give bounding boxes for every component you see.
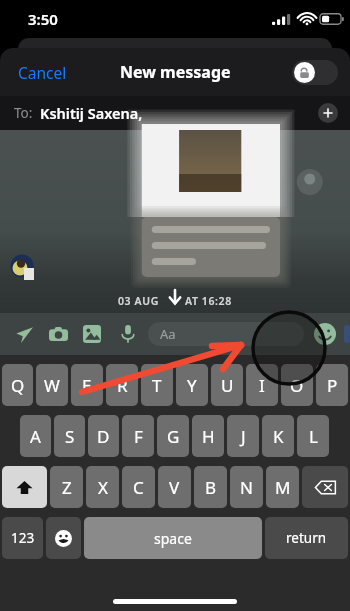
staticText: To: [14,104,33,122]
button[interactable]: space [84,517,262,559]
button[interactable]: return [265,517,348,559]
staticText: Z [62,476,72,499]
button[interactable]: I [246,364,278,406]
button[interactable]: F [122,415,154,457]
button[interactable]: O [281,364,313,406]
button[interactable]: Emoji [308,317,342,351]
staticText: H [202,425,215,448]
staticText: Kshitij Saxena, [40,103,143,123]
button[interactable]: Y [176,364,208,406]
button[interactable]: Voice message [114,320,142,348]
staticText: AT 16:28 [185,294,232,308]
button[interactable]: V [158,466,191,508]
staticText: 3:50 [28,9,58,29]
staticText: W [44,374,60,397]
button[interactable]: J [227,415,259,457]
button[interactable]: Aa [148,322,304,346]
staticText: E [82,374,92,397]
staticText: return [286,529,327,547]
button[interactable]: 123 [2,517,43,559]
button[interactable]: Cancel [0,54,85,91]
staticText: 03 AUG [118,294,159,308]
staticText: P [327,374,338,397]
staticText: Q [11,374,25,397]
button[interactable]: R [106,364,138,406]
staticText: J [241,425,246,448]
button[interactable]: Send [10,320,38,348]
staticText: D [97,425,110,448]
button[interactable]: K [262,415,294,457]
staticText: K [273,425,284,448]
staticText: F [134,425,143,448]
staticText: 123 [11,529,35,547]
staticText: X [98,476,108,499]
staticText: Y [187,374,197,397]
button[interactable]: Backspace [302,466,348,508]
button[interactable]: U [211,364,243,406]
button[interactable]: L [297,415,329,457]
staticText: space [154,529,192,548]
button[interactable]: X [86,466,119,508]
button[interactable]: M [266,466,299,508]
staticText: Aa [160,325,176,343]
button[interactable]: W [36,364,68,406]
button[interactable]: N [230,466,263,508]
staticText: M [275,476,291,499]
button[interactable]: D [88,415,119,457]
staticText: G [167,425,180,448]
button[interactable]: Photos [78,320,106,348]
staticText: R [117,374,128,397]
staticText: Cancel [18,62,67,83]
staticText: New message [120,61,231,83]
button[interactable]: Z [50,466,83,508]
button[interactable]: Emoji keyboard [46,517,81,559]
staticText: L [309,425,318,448]
button[interactable]: Add contact [318,103,338,123]
button[interactable]: C [122,466,155,508]
staticText: B [205,476,217,499]
staticText: T [152,374,162,397]
staticText: S [65,425,75,448]
button[interactable]: P [316,364,348,406]
staticText: V [169,476,180,499]
button[interactable]: Shift [2,466,47,508]
staticText: N [240,476,253,499]
button[interactable]: To: [0,96,350,130]
button[interactable]: Camera [44,320,72,348]
button[interactable]: Toggle end-to-end encryption [292,60,338,85]
button[interactable]: G [157,415,189,457]
staticText: O [290,374,304,397]
button[interactable]: H [192,415,224,457]
staticText: A [30,425,41,448]
staticText: U [221,374,234,397]
staticText: I [259,374,265,397]
button[interactable]: A [20,415,51,457]
button[interactable]: E [71,364,103,406]
button[interactable]: B [194,466,227,508]
staticText: C [133,476,144,499]
button[interactable]: T [141,364,173,406]
button[interactable]: Q [2,364,33,406]
button[interactable]: S [54,415,85,457]
